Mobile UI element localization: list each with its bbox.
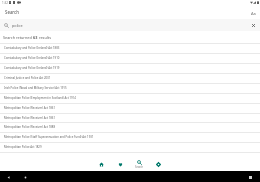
- button[interactable]: Metropolitan Police (Receiver) Act 1861: [0, 113, 260, 123]
- staticText: police: [12, 23, 23, 28]
- button[interactable]: Metropolitan Police Act 1829: [0, 142, 260, 152]
- staticText: Constabulary and Police (Ireland) Act 18…: [4, 46, 60, 50]
- button[interactable]: Recents: [246, 173, 254, 181]
- staticText: 63: [33, 35, 38, 40]
- button[interactable]: Constabulary and Police (Ireland) Act 18…: [0, 43, 260, 53]
- button[interactable]: police: [0, 19, 260, 31]
- staticText: Metropolitan Police (Staff Superannuatio…: [4, 135, 94, 139]
- button[interactable]: Home: [21, 173, 29, 181]
- staticText: Search: [135, 165, 144, 169]
- button[interactable]: Criminal Justice and Police Act 2001: [0, 73, 260, 83]
- staticText: Aa: [251, 11, 256, 16]
- button[interactable]: Irish Police (Naval and Military Service…: [0, 83, 260, 93]
- staticText: Constabulary and Police (Ireland) Act 19…: [4, 66, 60, 70]
- button[interactable]: Metropolitan Police (Employment in Scotl…: [0, 93, 260, 103]
- staticText: Search: [5, 9, 19, 15]
- button[interactable]: Constabulary and Police (Ireland) Act 19…: [0, 53, 260, 63]
- button[interactable]: Clear search: [249, 21, 257, 29]
- staticText: Metropolitan Police (Receiver) Act 1861: [4, 116, 56, 120]
- staticText: Irish Police (Naval and Military Service…: [4, 86, 67, 90]
- button[interactable]: Home: [92, 152, 111, 171]
- staticText: Search returned: [3, 35, 33, 40]
- button[interactable]: Metropolitan Police (Receiver) Act 1861: [0, 103, 260, 113]
- staticText: 1:32: [2, 1, 8, 5]
- button[interactable]: Constabulary and Police (Ireland) Act 19…: [0, 63, 260, 73]
- button[interactable]: Favourites: [111, 152, 130, 171]
- button[interactable]: Back: [4, 173, 12, 181]
- staticText: results: [38, 35, 51, 40]
- staticText: Criminal Justice and Police Act 2001: [4, 76, 51, 80]
- staticText: Metropolitan Police (Receiver) Act 1888: [4, 125, 56, 129]
- button[interactable]: Settings: [149, 152, 168, 171]
- staticText: Metropolitan Police (Receiver) Act 1861: [4, 106, 56, 110]
- staticText: Constabulary and Police (Ireland) Act 19…: [4, 56, 60, 60]
- staticText: Metropolitan Police Act 1829: [4, 145, 42, 149]
- button[interactable]: Text size: [248, 8, 258, 18]
- button[interactable]: Metropolitan Police (Receiver) Act 1888: [0, 122, 260, 132]
- staticText: Metropolitan Police (Employment in Scotl…: [4, 96, 76, 100]
- button[interactable]: Metropolitan Police (Staff Superannuatio…: [0, 132, 260, 142]
- button[interactable]: Search: [130, 152, 149, 171]
